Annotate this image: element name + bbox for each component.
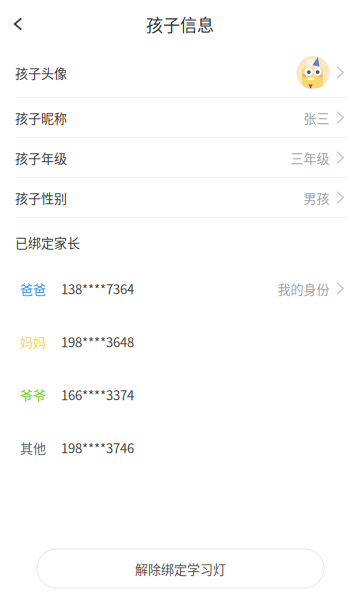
staticText: 166****3374 [61,385,134,404]
button[interactable]: 孩子昵称 [0,98,360,137]
button[interactable]: 孩子性别 [0,178,360,217]
button[interactable]: 解除绑定学习灯 [37,549,324,588]
staticText: 我的身份 [277,279,329,298]
button[interactable]: 孩子头像 [0,48,360,97]
button[interactable]: Back [1,2,35,46]
staticText: 爸爸 [20,279,46,298]
staticText: 三年级 [290,148,329,167]
staticText: 解除绑定学习灯 [135,559,226,578]
staticText: 孩子年级 [15,148,67,167]
staticText: 孩子信息 [146,12,214,36]
staticText: 张三 [303,108,329,127]
button[interactable]: 爸爸 [0,262,360,315]
staticText: 已绑定家长 [15,233,80,251]
staticText: 198****3648 [61,332,134,351]
button[interactable]: 孩子年级 [0,138,360,177]
staticText: 其他 [20,438,46,457]
staticText: 男孩 [303,188,329,207]
staticText: 妈妈 [20,332,46,351]
staticText: 孩子头像 [15,63,67,82]
staticText: 138****7364 [61,279,134,298]
staticText: 孩子性别 [15,188,67,207]
button[interactable]: 妈妈 [0,315,360,368]
button[interactable]: 爷爷 [0,368,360,421]
button[interactable]: 其他 [0,421,360,474]
staticText: 孩子昵称 [15,108,67,127]
staticText: 爷爷 [20,385,46,404]
staticText: 198****3746 [61,438,134,457]
